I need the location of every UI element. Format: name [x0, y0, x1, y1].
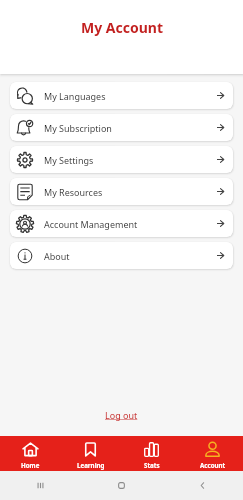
button[interactable]: My Resources	[10, 178, 233, 205]
button[interactable]: Stats	[121, 436, 182, 471]
staticText: My Account	[81, 18, 163, 37]
other: Recents	[0, 471, 81, 500]
button[interactable]: About	[10, 242, 233, 269]
staticText: My Subscription	[44, 122, 112, 134]
button[interactable]: My Subscription	[10, 114, 233, 141]
button[interactable]: My Languages	[10, 82, 233, 109]
staticText: Account	[200, 461, 226, 469]
other: Home	[81, 471, 162, 500]
staticText: Learning	[77, 461, 105, 469]
staticText: My Settings	[44, 154, 94, 166]
staticText: Home	[21, 461, 40, 469]
button[interactable]: Log out	[95, 405, 148, 425]
button[interactable]: Account Management	[10, 210, 233, 237]
other: Back	[162, 471, 243, 500]
staticText: My Resources	[44, 186, 103, 198]
staticText: My Languages	[44, 90, 106, 102]
button[interactable]: My Settings	[10, 146, 233, 173]
staticText: Log out	[105, 409, 138, 421]
button[interactable]: Learning	[60, 436, 121, 471]
staticText: About	[44, 250, 70, 262]
staticText: Account Management	[44, 218, 138, 230]
button[interactable]: Home	[0, 436, 60, 471]
staticText: Stats	[144, 461, 160, 469]
button[interactable]: Account	[182, 436, 243, 471]
